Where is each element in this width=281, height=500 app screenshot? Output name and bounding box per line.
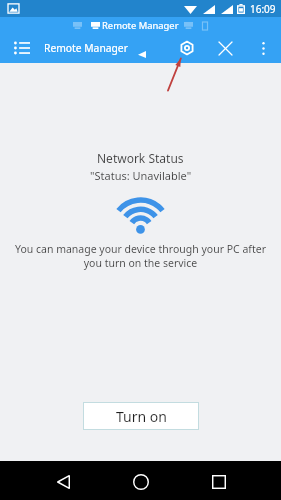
staticText: 16:09 — [250, 2, 276, 16]
staticText: Remote Manager — [102, 19, 179, 32]
button[interactable]: Menu — [7, 33, 37, 63]
button[interactable]: More options — [248, 33, 278, 63]
button[interactable]: Home — [124, 465, 158, 499]
button[interactable]: Settings — [172, 33, 202, 63]
button[interactable]: Close — [210, 33, 240, 63]
staticText: "Status: Unavilable" — [90, 168, 192, 183]
staticText: You can manage your device through your … — [10, 242, 271, 270]
button[interactable]: Recent apps — [202, 465, 236, 499]
staticText: Remote Manager — [44, 41, 128, 55]
button[interactable]: Turn on — [83, 402, 199, 430]
staticText: Network Status — [97, 150, 184, 166]
button[interactable]: Back — [46, 465, 80, 499]
staticText: Turn on — [116, 407, 167, 426]
